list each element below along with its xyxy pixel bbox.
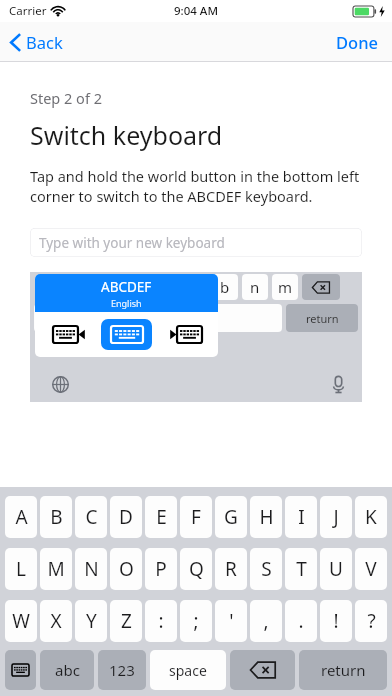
button[interactable]: C [75,496,107,538]
button[interactable]: U [320,548,352,590]
staticText: Type with your new keyboard [39,234,225,252]
staticText: K [365,504,377,530]
button[interactable]: b [212,274,238,300]
button[interactable]: : [145,600,177,642]
staticText: P [155,556,167,582]
button[interactable]: Dictate [323,369,353,399]
staticText: m [278,277,293,297]
button[interactable]: Y [75,600,107,642]
staticText: X [50,608,62,634]
button[interactable]: T [285,548,317,590]
staticText: N [84,556,99,582]
staticText: Back [26,31,63,53]
button[interactable]: Keyboard layout [101,319,152,350]
staticText: T [296,556,307,582]
staticText: W [12,608,30,634]
staticText: ABCDEF [101,278,152,296]
staticText: E [156,504,167,530]
button[interactable]: Next keyboard [5,650,36,690]
button[interactable]: ABCDEF [35,274,218,312]
button[interactable]: space [34,304,282,332]
staticText: G [224,504,238,530]
button[interactable]: F [180,496,212,538]
staticText: Y [86,608,97,634]
staticText: M [47,556,65,582]
button[interactable]: Keyboard layout [160,319,211,350]
button[interactable]: Back [0,25,75,59]
button[interactable]: R [215,548,247,590]
staticText: H [259,504,274,530]
staticText: n [250,277,260,297]
button[interactable]: Backspace [302,274,340,300]
button[interactable]: ; [180,600,212,642]
button[interactable]: M [40,548,72,590]
button[interactable]: . [285,600,317,642]
staticText: O [119,556,134,582]
button[interactable]: S [250,548,282,590]
staticText: b [220,277,230,297]
button[interactable]: O [110,548,142,590]
staticText: L [16,556,26,582]
button[interactable]: Backspace [230,650,295,690]
button[interactable]: J [320,496,352,538]
staticText: Carrier [9,3,47,19]
button[interactable]: P [145,548,177,590]
staticText: 9:04 AM [174,3,218,19]
staticText: Q [189,556,204,582]
button[interactable]: ' [215,600,247,642]
button[interactable]: Keyboard layout [43,319,94,350]
button[interactable]: return [299,650,387,690]
staticText: V [365,556,377,582]
staticText: English [111,297,142,309]
staticText: Z [121,608,132,634]
button[interactable]: Z [110,600,142,642]
button[interactable]: G [215,496,247,538]
button[interactable]: I [285,496,317,538]
button[interactable]: space [150,650,226,690]
staticText: : [158,608,164,634]
button[interactable]: m [272,274,298,300]
button[interactable]: ? [355,600,387,642]
button[interactable]: abc [40,650,94,690]
staticText: space [169,661,207,680]
staticText: A [15,504,28,530]
button[interactable]: D [110,496,142,538]
button[interactable]: , [250,600,282,642]
button[interactable]: K [355,496,387,538]
staticText: Tap and hold the world button in the bot… [30,166,362,206]
staticText: ! [333,608,339,634]
button[interactable]: Done [322,25,392,59]
button[interactable]: W [5,600,37,642]
staticText: U [329,556,343,582]
button[interactable]: Q [180,548,212,590]
button[interactable]: A [5,496,37,538]
staticText: ; [193,608,199,634]
button[interactable]: N [75,548,107,590]
button[interactable]: return [286,304,358,332]
staticText: I [298,504,305,530]
button[interactable]: 123 [98,650,146,690]
button[interactable]: V [355,548,387,590]
staticText: J [333,504,339,530]
staticText: B [50,504,63,530]
button[interactable]: B [40,496,72,538]
staticText: ? [367,608,376,634]
staticText: return [306,311,339,326]
button[interactable]: Type with your new keyboard [30,228,362,257]
button[interactable]: ! [320,600,352,642]
button[interactable]: L [5,548,37,590]
staticText: abc [55,660,80,680]
staticText: C [85,504,98,530]
staticText: . [298,608,304,634]
staticText: ' [229,608,234,634]
staticText: F [191,504,201,530]
button[interactable]: E [145,496,177,538]
staticText: Step 2 of 2 [30,88,102,108]
button[interactable]: Next keyboard [45,369,75,399]
button[interactable]: H [250,496,282,538]
button[interactable]: X [40,600,72,642]
staticText: S [261,556,272,582]
staticText: Switch keyboard [30,118,223,152]
staticText: D [119,504,133,530]
button[interactable]: n [242,274,268,300]
